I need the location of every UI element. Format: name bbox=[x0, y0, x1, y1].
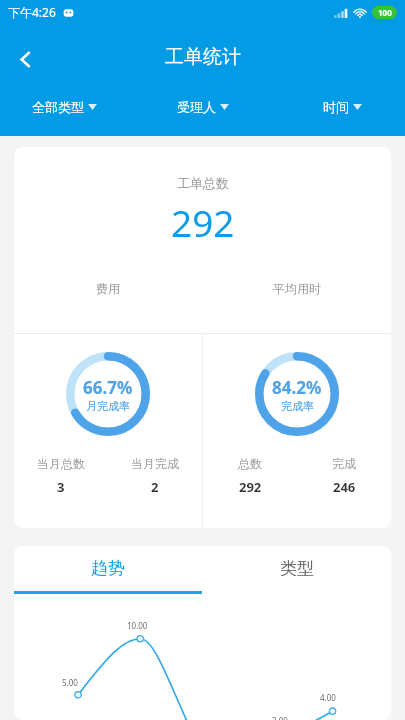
button[interactable]: 受理人 bbox=[135, 92, 270, 122]
button[interactable]: 全部类型 bbox=[0, 92, 135, 122]
button[interactable]: 趋势 bbox=[14, 546, 202, 591]
staticText: 时间 bbox=[323, 99, 349, 115]
button[interactable]: Back bbox=[4, 38, 46, 80]
staticText: 受理人 bbox=[177, 99, 216, 115]
staticText: 5.00 bbox=[62, 677, 78, 688]
button[interactable]: 66.7% bbox=[14, 334, 202, 528]
staticText: 类型 bbox=[280, 558, 314, 579]
staticText: 费用 bbox=[96, 281, 120, 296]
staticText: 10.00 bbox=[127, 620, 148, 631]
staticText: 292 bbox=[171, 197, 235, 247]
button[interactable]: 时间 bbox=[270, 92, 405, 122]
staticText: 66.7% bbox=[83, 376, 133, 399]
staticText: 4.00 bbox=[320, 692, 336, 703]
staticText: 84.2% bbox=[272, 376, 322, 399]
staticText: 当月总数 bbox=[37, 456, 85, 471]
staticText: 工单统计 bbox=[165, 45, 241, 69]
button[interactable]: 84.2% bbox=[203, 334, 391, 528]
staticText: 月完成率 bbox=[86, 399, 130, 413]
staticText: 完成率 bbox=[281, 399, 314, 413]
staticText: 工单总数 bbox=[177, 175, 229, 191]
staticText: 100 bbox=[378, 7, 392, 18]
staticText: 平均用时 bbox=[273, 281, 321, 296]
staticText: 当月完成 bbox=[131, 456, 179, 471]
staticText: 总数 bbox=[238, 456, 262, 471]
staticText: 246 bbox=[333, 478, 356, 496]
staticText: 3 bbox=[57, 478, 65, 496]
button[interactable]: 类型 bbox=[202, 546, 391, 591]
staticText: 完成 bbox=[332, 456, 356, 471]
staticText: 3.00 bbox=[272, 715, 288, 720]
staticText: 趋势 bbox=[91, 558, 125, 579]
staticText: 全部类型 bbox=[32, 99, 84, 115]
staticText: 下午4:26 bbox=[8, 4, 56, 20]
staticText: 292 bbox=[239, 478, 262, 496]
staticText: 2 bbox=[151, 478, 159, 496]
